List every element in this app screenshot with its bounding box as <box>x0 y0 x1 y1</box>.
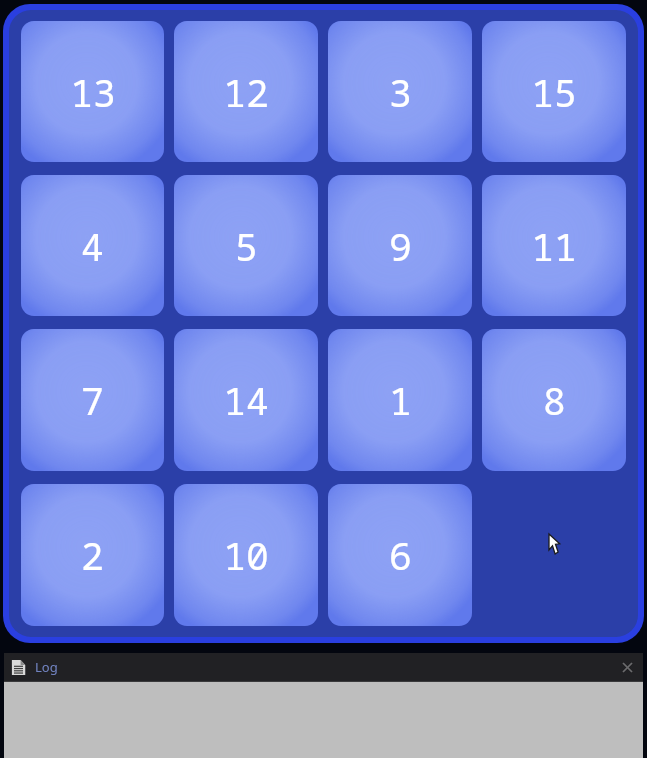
button[interactable]: 14 <box>174 329 318 471</box>
staticText: 5 <box>235 220 258 272</box>
staticText: 2 <box>81 529 104 581</box>
button[interactable]: 6 <box>328 484 472 626</box>
staticText: 13 <box>70 66 116 118</box>
staticText: 12 <box>223 66 269 118</box>
button[interactable]: 3 <box>328 21 472 162</box>
staticText: 11 <box>531 220 577 272</box>
staticText: 8 <box>543 374 566 426</box>
staticText: 6 <box>389 529 412 581</box>
button[interactable]: 8 <box>482 329 626 471</box>
button[interactable]: 7 <box>21 329 164 471</box>
button[interactable]: 12 <box>174 21 318 162</box>
button[interactable]: 9 <box>328 175 472 316</box>
staticText: 14 <box>223 374 269 426</box>
button[interactable]: 2 <box>21 484 164 626</box>
staticText: 10 <box>223 529 269 581</box>
staticText: Log <box>35 658 58 676</box>
staticText: 1 <box>389 374 412 426</box>
staticText: 7 <box>81 374 104 426</box>
staticText: 9 <box>389 220 412 272</box>
staticText: 3 <box>389 66 412 118</box>
button[interactable]: 5 <box>174 175 318 316</box>
button[interactable]: 4 <box>21 175 164 316</box>
button[interactable]: Close log panel <box>613 653 641 681</box>
button[interactable]: 15 <box>482 21 626 162</box>
staticText: 15 <box>531 66 577 118</box>
staticText: 4 <box>81 220 104 272</box>
button[interactable]: 1 <box>328 329 472 471</box>
button[interactable]: 11 <box>482 175 626 316</box>
button[interactable]: 10 <box>174 484 318 626</box>
button[interactable]: 13 <box>21 21 164 162</box>
